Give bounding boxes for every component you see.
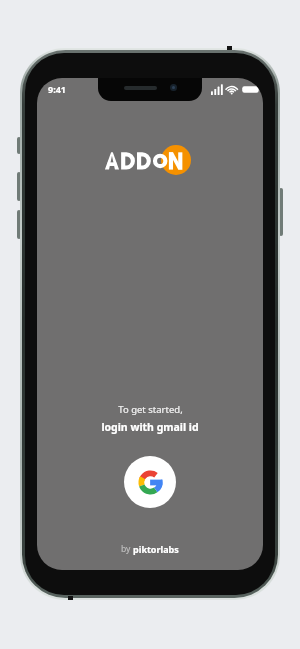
staticText: by xyxy=(121,543,133,555)
button[interactable]: Sign in with Google xyxy=(124,456,176,508)
staticText: 9:41 xyxy=(48,83,66,95)
staticText: piktorlabs xyxy=(133,543,179,555)
staticText: login with gmail id xyxy=(101,420,199,434)
staticText: To get started, xyxy=(118,403,183,416)
